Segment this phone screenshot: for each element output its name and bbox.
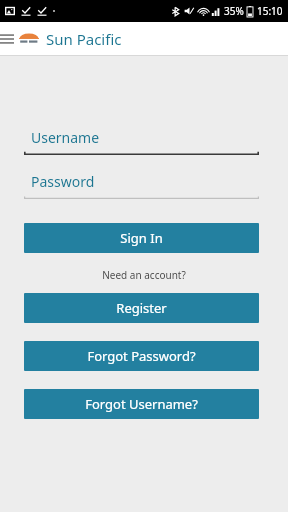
staticText: Forgot Password? [87,347,196,365]
staticText: 15:10 [257,4,283,18]
staticText: Password [31,172,95,191]
button[interactable]: Forgot Username? [24,389,259,419]
staticText: Forgot Username? [85,395,198,413]
button[interactable]: Forgot Password? [24,341,259,371]
button[interactable]: Sign In [24,223,259,253]
staticText: 35% [224,4,244,18]
staticText: Register [116,299,167,317]
button[interactable]: Open navigation menu [0,27,19,51]
button[interactable]: Password [24,172,259,199]
button[interactable]: Register [24,293,259,323]
button[interactable]: Username [24,128,259,155]
staticText: Username [31,128,100,147]
staticText: Need an account? [0,268,288,282]
staticText: Sign In [120,229,163,247]
staticText: Sun Pacific [46,29,122,49]
